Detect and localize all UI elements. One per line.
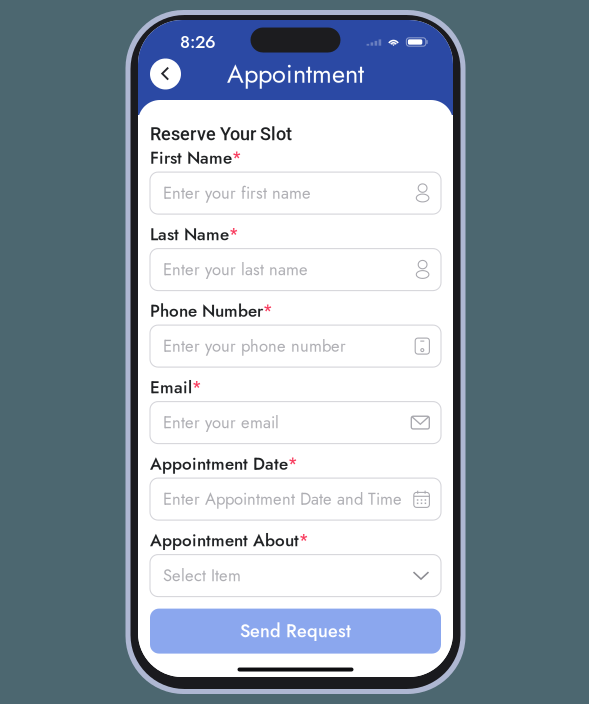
button[interactable]: Enter your last name [150, 249, 441, 291]
staticText: Select Item [163, 564, 241, 587]
staticText: * [192, 376, 201, 399]
staticText: Reserve Your Slot [150, 123, 292, 145]
button[interactable]: Enter your email [150, 402, 441, 444]
staticText: Last Name [150, 222, 229, 247]
staticText: First Name [150, 146, 232, 170]
staticText: * [232, 146, 241, 169]
staticText: Enter Appointment Date and Time [163, 487, 402, 511]
button[interactable]: Enter Appointment Date and Time [150, 478, 441, 520]
staticText: 8:26 [180, 29, 216, 54]
button[interactable]: Select Item [150, 555, 441, 597]
staticText: Appointment [227, 56, 364, 92]
staticText: Enter your last name [163, 258, 308, 281]
staticText: * [288, 452, 297, 475]
staticText: Phone Number [150, 299, 263, 323]
staticText: Appointment Date [150, 452, 288, 476]
staticText: Email [150, 375, 192, 400]
button[interactable]: Send Request [150, 609, 441, 654]
staticText: * [263, 299, 272, 322]
staticText: Enter your email [163, 411, 279, 434]
button[interactable]: Enter your phone number [150, 325, 441, 367]
staticText: Appointment About [150, 528, 299, 553]
staticText: Send Request [240, 618, 351, 644]
staticText: Enter your first name [163, 181, 311, 205]
staticText: Enter your phone number [163, 334, 346, 358]
button[interactable]: Back [150, 58, 181, 89]
button[interactable]: Enter your first name [150, 172, 441, 214]
staticText: * [299, 529, 308, 552]
staticText: * [229, 223, 238, 246]
